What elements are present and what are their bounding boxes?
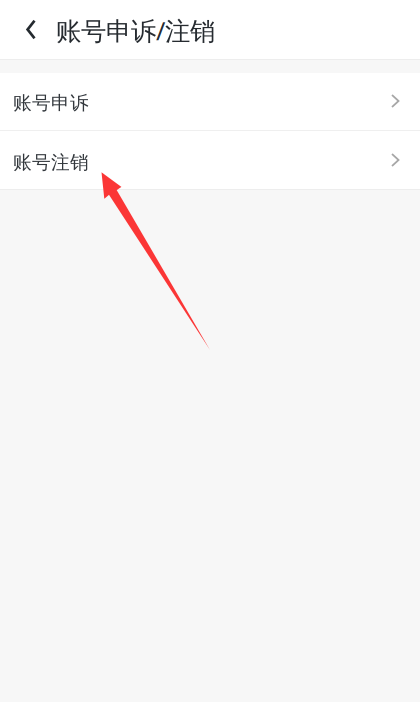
button[interactable]: 账号申诉 <box>0 73 420 130</box>
staticText: 账号申诉 <box>13 91 89 114</box>
staticText: 账号申诉/注销 <box>56 14 215 47</box>
staticText: 账号注销 <box>13 151 89 174</box>
button[interactable]: Back <box>0 0 35 59</box>
button[interactable]: 账号注销 <box>0 131 420 189</box>
